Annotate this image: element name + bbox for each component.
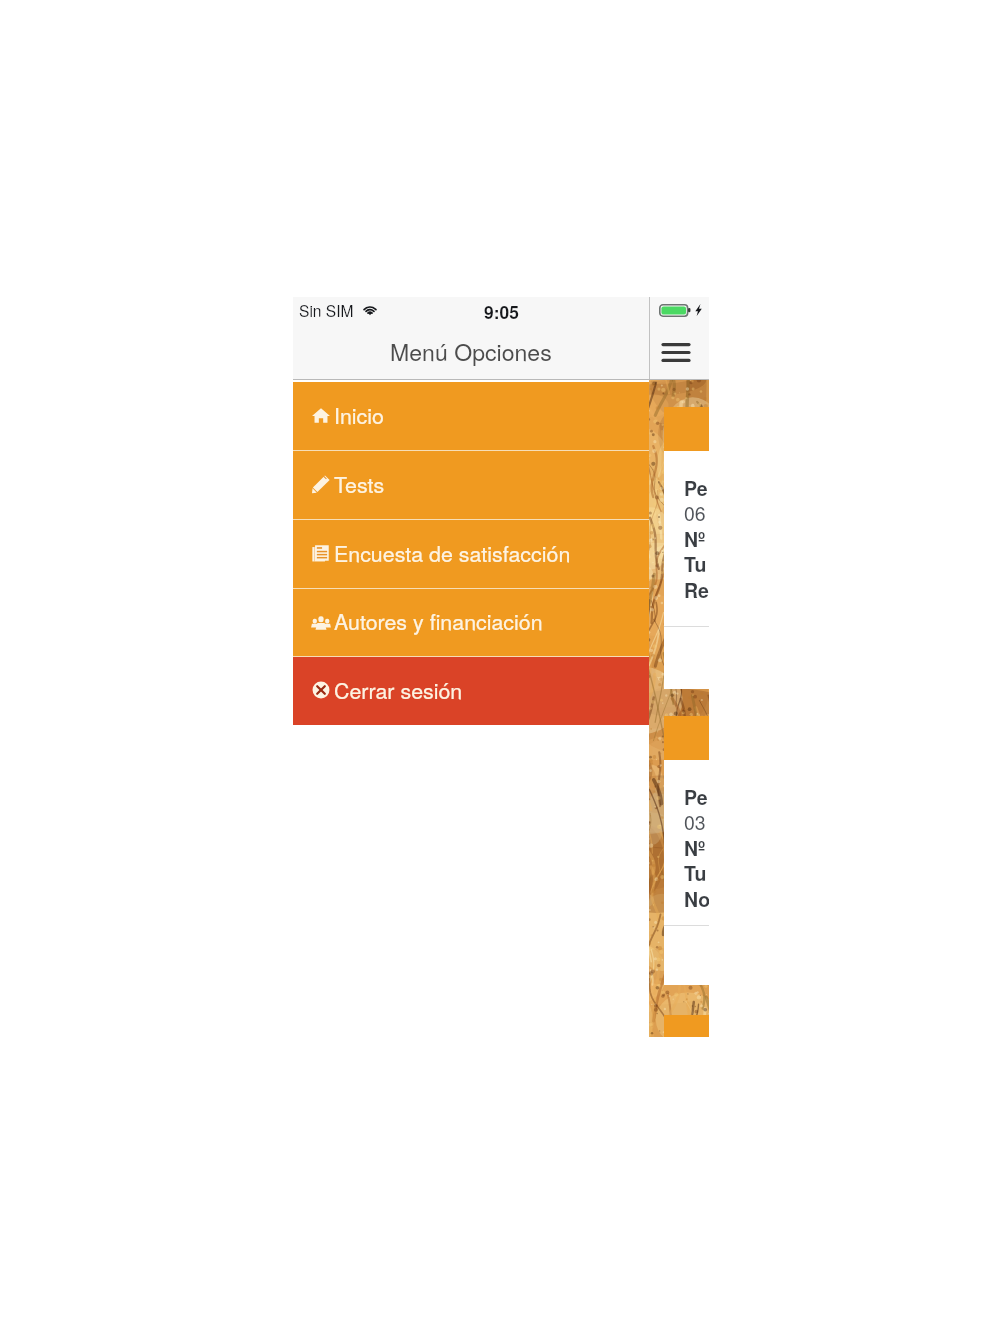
staticText: 06 [684, 499, 706, 527]
staticText: Sin SIM [299, 299, 354, 321]
staticText: Menú Opciones [390, 334, 552, 367]
staticText: Pe [684, 783, 708, 811]
staticText: Tu [684, 550, 707, 578]
button[interactable]: Cerrar sesión [293, 657, 649, 725]
button[interactable]: Pe [664, 716, 709, 985]
button[interactable]: Inicio [293, 382, 649, 450]
staticText: 9:05 [484, 299, 519, 324]
staticText: No [684, 885, 709, 913]
button[interactable]: Tests [293, 451, 649, 519]
staticText: Inicio [334, 399, 384, 430]
button[interactable]: Abrir menú [649, 325, 703, 379]
staticText: Pe [684, 474, 708, 502]
staticText: Re [684, 576, 709, 604]
button[interactable]: Autores y financiación [293, 589, 649, 656]
staticText: Nº [684, 834, 706, 862]
button[interactable]: Pe [664, 407, 709, 689]
staticText: Nº [684, 525, 706, 553]
staticText: 03 [684, 808, 706, 836]
staticText: Tests [334, 468, 385, 499]
staticText: Encuesta de satisfacción [334, 537, 571, 568]
staticText: Cerrar sesión [334, 674, 463, 705]
staticText: Autores y financiación [334, 605, 543, 636]
button[interactable]: Encuesta de satisfacción [293, 520, 649, 588]
staticText: Tu [684, 859, 707, 887]
